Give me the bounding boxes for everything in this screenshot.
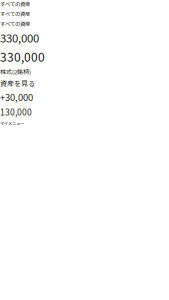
staticText: マイメニュー: [0, 120, 24, 126]
staticText: すべての資産: [0, 19, 30, 27]
staticText: 130,000: [0, 106, 32, 118]
staticText: 330,000: [0, 29, 39, 46]
staticText: 330,000: [0, 48, 45, 65]
staticText: 株式(2銘柄): [0, 67, 31, 76]
staticText: すべての資産: [0, 0, 30, 8]
staticText: +30,000: [0, 90, 33, 104]
staticText: 資産を見る: [0, 78, 35, 88]
staticText: すべての資産: [0, 10, 30, 17]
